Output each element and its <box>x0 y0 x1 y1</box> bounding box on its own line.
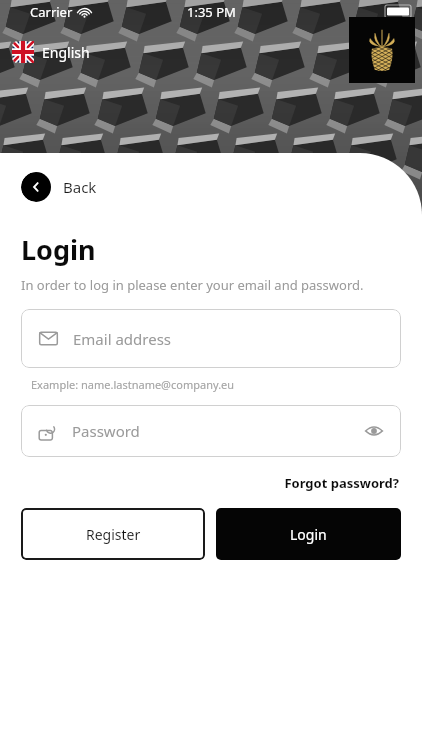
staticText: Email address <box>73 329 172 349</box>
button[interactable]: English <box>10 39 92 65</box>
button[interactable]: Register <box>21 508 205 560</box>
staticText: Login <box>290 525 327 544</box>
staticText: Carrier <box>30 3 73 21</box>
staticText: Forgot password? <box>284 474 399 492</box>
staticText: English <box>42 43 90 62</box>
staticText: 1:35 PM <box>187 3 236 21</box>
staticText: Password <box>72 421 361 441</box>
button[interactable]: Password <box>21 405 401 457</box>
button[interactable]: Login <box>216 508 401 560</box>
staticText: Login <box>21 231 96 268</box>
staticText: Back <box>63 177 97 197</box>
button[interactable]: Show password <box>361 418 387 444</box>
staticText: In order to log in please enter your ema… <box>21 276 364 294</box>
staticText: Example: name.lastname@company.eu <box>31 377 235 392</box>
button[interactable]: Email address <box>21 309 401 368</box>
button[interactable]: Logo <box>349 17 415 83</box>
staticText: Register <box>86 525 141 544</box>
button[interactable]: Back <box>21 172 105 202</box>
button[interactable]: Forgot password? <box>282 472 401 494</box>
